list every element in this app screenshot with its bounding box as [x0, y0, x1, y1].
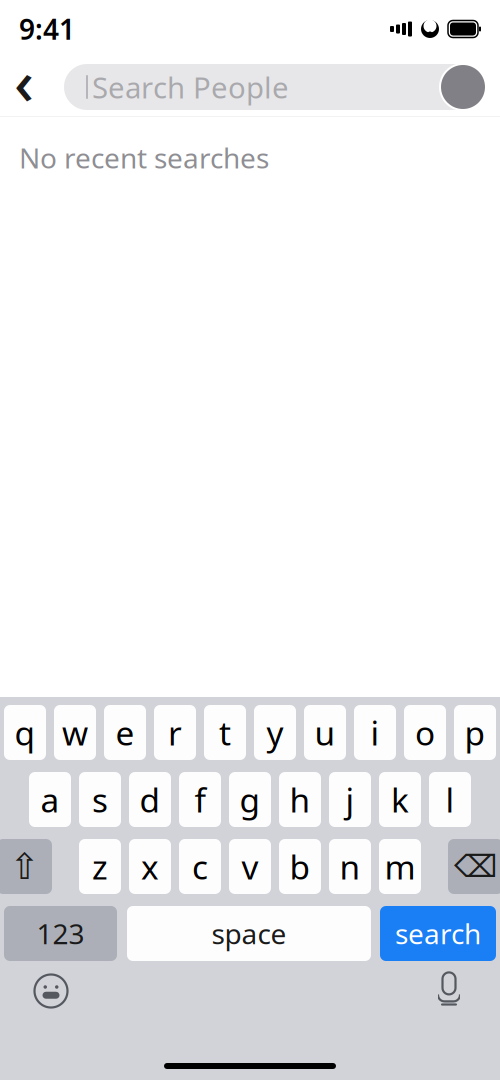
button[interactable]: n	[329, 839, 371, 894]
staticText: u	[314, 710, 335, 755]
button[interactable]: Shift	[0, 839, 52, 894]
staticText: f	[194, 777, 205, 822]
staticText: m	[384, 844, 415, 889]
button[interactable]: b	[279, 839, 321, 894]
staticText: t	[219, 710, 231, 755]
staticText: x	[141, 844, 159, 889]
staticText: l	[445, 777, 454, 822]
button[interactable]: f	[179, 772, 221, 827]
staticText: q	[14, 710, 35, 755]
staticText: b	[289, 844, 310, 889]
button[interactable]: Back	[1, 64, 47, 110]
button[interactable]: k	[379, 772, 421, 827]
button[interactable]: h	[279, 772, 321, 827]
button[interactable]: i	[354, 705, 396, 760]
staticText: No recent searches	[19, 139, 269, 176]
button[interactable]: Dictate	[427, 969, 471, 1013]
button[interactable]: Search People	[64, 64, 485, 110]
button[interactable]: p	[454, 705, 496, 760]
staticText: w	[62, 710, 88, 755]
staticText: a	[40, 777, 59, 822]
staticText: c	[192, 844, 208, 889]
staticText: p	[464, 710, 485, 755]
staticText: ‹	[14, 40, 34, 122]
staticText: 123	[36, 915, 84, 952]
button[interactable]: o	[404, 705, 446, 760]
staticText: s	[92, 777, 108, 822]
button[interactable]: Emoji	[29, 969, 73, 1013]
button[interactable]: e	[104, 705, 146, 760]
staticText: 9:41	[19, 10, 75, 48]
staticText: z	[92, 844, 108, 889]
staticText: space	[211, 915, 286, 952]
staticText: ⌫	[454, 849, 497, 884]
staticText: y	[266, 710, 283, 755]
button[interactable]: y	[254, 705, 296, 760]
button[interactable]: m	[379, 839, 421, 894]
staticText: k	[391, 777, 409, 822]
staticText: j	[345, 777, 354, 822]
button[interactable]: Delete	[448, 839, 500, 894]
button[interactable]: space	[127, 906, 371, 961]
staticText: i	[370, 710, 379, 755]
staticText: g	[239, 777, 260, 822]
staticText: v	[241, 844, 258, 889]
button[interactable]: s	[79, 772, 121, 827]
staticText: r	[168, 710, 182, 755]
button[interactable]: Profile	[440, 64, 486, 110]
button[interactable]: u	[304, 705, 346, 760]
button[interactable]: r	[154, 705, 196, 760]
button[interactable]: 123	[4, 906, 117, 961]
button[interactable]: c	[179, 839, 221, 894]
button[interactable]: search	[380, 906, 496, 961]
staticText: o	[415, 710, 435, 755]
button[interactable]: z	[79, 839, 121, 894]
button[interactable]: x	[129, 839, 171, 894]
staticText: d	[139, 777, 160, 822]
staticText: search	[395, 915, 481, 952]
button[interactable]: t	[204, 705, 246, 760]
button[interactable]: d	[129, 772, 171, 827]
staticText: n	[339, 844, 360, 889]
button[interactable]: j	[329, 772, 371, 827]
button[interactable]: a	[29, 772, 71, 827]
button[interactable]: g	[229, 772, 271, 827]
staticText: e	[115, 710, 134, 755]
button[interactable]: q	[4, 705, 46, 760]
button[interactable]: w	[54, 705, 96, 760]
staticText: Search People	[92, 67, 289, 106]
button[interactable]: v	[229, 839, 271, 894]
button[interactable]: l	[429, 772, 471, 827]
staticText: ⇧	[9, 846, 39, 887]
staticText: h	[289, 777, 310, 822]
